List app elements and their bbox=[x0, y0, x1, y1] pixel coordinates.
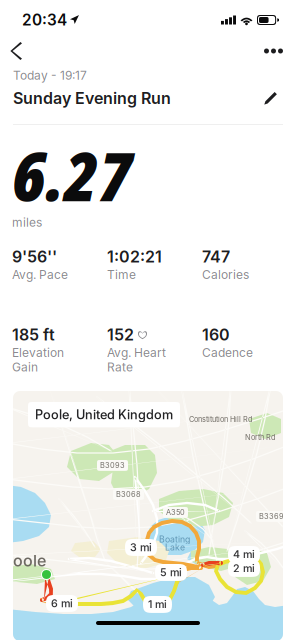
staticText: 3 mi bbox=[130, 541, 152, 554]
staticText: 4 mi bbox=[233, 548, 255, 561]
staticText: 20:34 bbox=[22, 11, 67, 29]
staticText: Avg. Heart Rate bbox=[107, 345, 166, 374]
staticText: Calories bbox=[202, 267, 249, 282]
staticText: A350 bbox=[166, 508, 185, 517]
staticText: 2 mi bbox=[233, 562, 255, 575]
staticText: Cadence bbox=[202, 345, 253, 360]
staticText: 1 mi bbox=[148, 598, 167, 611]
staticText: B3093 bbox=[100, 461, 125, 470]
staticText: Time bbox=[107, 267, 136, 282]
staticText: 747 bbox=[202, 247, 230, 266]
staticText: Lake bbox=[165, 542, 185, 552]
staticText: 185 ft bbox=[12, 325, 55, 344]
staticText: 6.27 bbox=[12, 130, 132, 221]
staticText: Sunday Evening Run bbox=[13, 88, 171, 108]
staticText: Boating bbox=[159, 534, 190, 544]
staticText: North Rd bbox=[245, 433, 275, 442]
staticText: 1:02:21 bbox=[107, 247, 162, 266]
staticText: 152 bbox=[107, 325, 134, 344]
staticText: B3369 bbox=[259, 512, 284, 521]
staticText: Today - 19:17 bbox=[13, 68, 87, 82]
staticText: Elevation Gain bbox=[12, 345, 64, 374]
staticText: miles bbox=[12, 215, 42, 229]
staticText: 5 mi bbox=[160, 566, 182, 579]
staticText: Constitution Hill Rd bbox=[189, 415, 252, 424]
staticText: 6 mi bbox=[51, 597, 73, 610]
button[interactable]: Edit workout bbox=[258, 85, 284, 111]
staticText: Poole bbox=[3, 551, 46, 570]
staticText: B3068 bbox=[116, 490, 141, 499]
staticText: Avg. Pace bbox=[12, 267, 68, 282]
button[interactable]: More options bbox=[248, 34, 296, 67]
staticText: Poole, United Kingdom bbox=[35, 407, 173, 422]
button[interactable]: Back bbox=[0, 34, 38, 68]
staticText: 9'56'' bbox=[12, 247, 57, 266]
staticText: 160 bbox=[202, 325, 230, 344]
